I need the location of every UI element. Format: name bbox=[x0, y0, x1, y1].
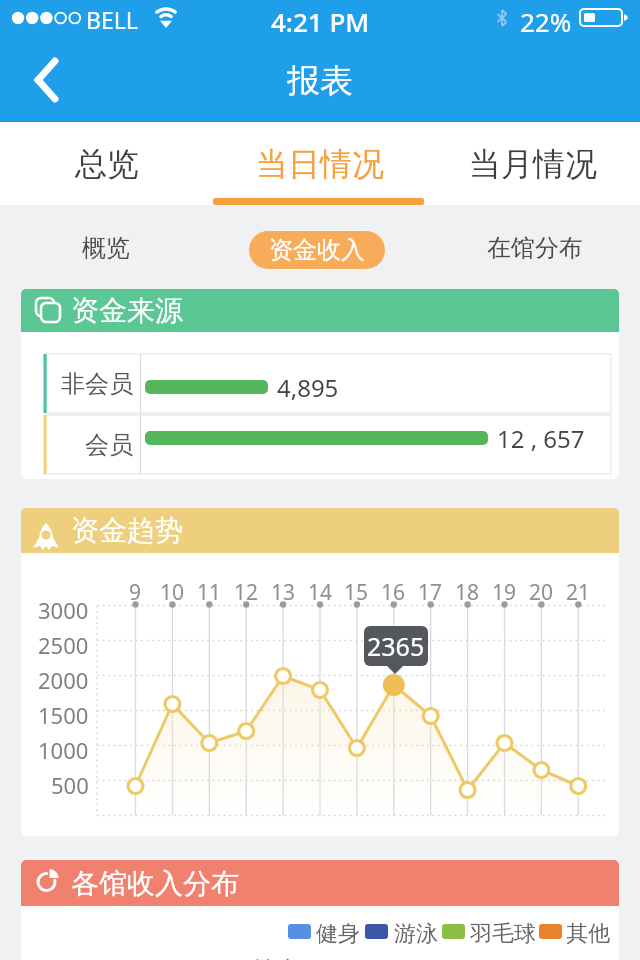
staticText: 3000 bbox=[38, 595, 89, 620]
staticText: 4,895 bbox=[277, 371, 339, 404]
staticText: 13 bbox=[271, 578, 296, 602]
staticText: 20 bbox=[529, 578, 554, 602]
staticText: 2365 bbox=[367, 629, 425, 663]
staticText: 其他 bbox=[566, 920, 610, 944]
staticText: 各馆收入分布 bbox=[71, 866, 239, 901]
staticText: 1500 bbox=[38, 700, 89, 725]
button[interactable]: 资金收入 bbox=[249, 231, 385, 269]
staticText: 羽毛球 bbox=[470, 920, 536, 944]
staticText: 19 bbox=[492, 578, 517, 602]
button[interactable]: 在馆分布 bbox=[460, 214, 610, 282]
staticText: 资金趋势 bbox=[71, 513, 183, 548]
staticText: 概览 bbox=[82, 233, 130, 263]
staticText: 11 bbox=[197, 578, 222, 602]
staticText: 15 bbox=[344, 578, 369, 602]
staticText: 资金来源 bbox=[71, 293, 183, 328]
button[interactable]: 当月情况 bbox=[426, 122, 640, 205]
button[interactable]: 总览 bbox=[0, 122, 214, 205]
staticText: 16 bbox=[381, 578, 406, 602]
staticText: 2500 bbox=[38, 630, 89, 655]
staticText: 22% bbox=[520, 4, 572, 32]
staticText: 10 bbox=[160, 578, 185, 602]
staticText: 12 bbox=[234, 578, 259, 602]
button[interactable] bbox=[20, 50, 80, 110]
staticText: 健身：22 bbox=[252, 952, 352, 960]
button[interactable]: 概览 bbox=[36, 214, 176, 282]
staticText: 当月情况 bbox=[469, 144, 597, 184]
staticText: 非会员 bbox=[61, 369, 133, 399]
staticText: 健身 bbox=[316, 920, 360, 944]
staticText: 游泳 bbox=[394, 920, 438, 944]
staticText: 17 bbox=[418, 578, 443, 602]
staticText: 报表 bbox=[287, 60, 353, 102]
staticText: 会员 bbox=[85, 430, 133, 460]
staticText: 9 bbox=[129, 578, 142, 602]
staticText: BELL bbox=[86, 4, 138, 32]
staticText: 14 bbox=[308, 578, 333, 602]
staticText: 在馆分布 bbox=[487, 233, 583, 263]
staticText: 1000 bbox=[38, 735, 89, 760]
staticText: 500 bbox=[51, 770, 89, 795]
staticText: 12 , 657 bbox=[497, 422, 585, 455]
staticText: 总览 bbox=[75, 144, 139, 184]
staticText: 2000 bbox=[38, 665, 89, 690]
staticText: 18 bbox=[455, 578, 480, 602]
staticText: 资金收入 bbox=[269, 235, 365, 265]
staticText: 21 bbox=[566, 578, 591, 602]
staticText: 4:21 PM bbox=[271, 4, 370, 32]
button[interactable]: 当日情况 bbox=[213, 122, 427, 205]
staticText: 当日情况 bbox=[256, 144, 384, 184]
